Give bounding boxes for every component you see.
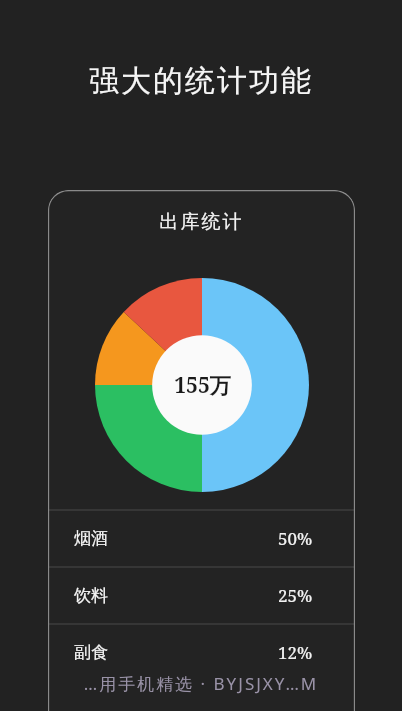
staticText: 12%: [278, 641, 313, 664]
button[interactable]: 烟酒: [48, 510, 355, 567]
button[interactable]: 出库统计: [48, 190, 355, 711]
staticText: 25%: [278, 584, 313, 607]
staticText: …用手机精选 · BYJSJXY…M: [0, 672, 402, 695]
staticText: 50%: [278, 527, 313, 550]
button[interactable]: 饮料: [48, 567, 355, 624]
staticText: 副食: [74, 642, 108, 663]
staticText: 饮料: [74, 585, 108, 606]
staticText: 烟酒: [74, 528, 108, 549]
staticText: 155万: [174, 371, 231, 400]
staticText: 强大的统计功能: [0, 62, 402, 100]
staticText: 出库统计: [48, 210, 355, 234]
button[interactable]: 副食: [48, 624, 355, 681]
